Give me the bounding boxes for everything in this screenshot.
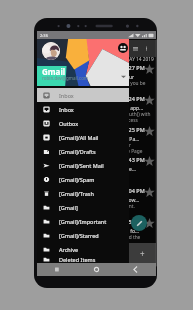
button[interactable]: Compose: [131, 215, 147, 231]
button[interactable]: [Gmail]/Trash: [37, 186, 129, 200]
button[interactable]: Recents: [37, 263, 76, 276]
staticText: Deleted Items: [59, 256, 96, 263]
button[interactable]: Back: [116, 263, 156, 276]
staticText: MAY 14 2019: [125, 56, 154, 63]
staticText: llow...: [126, 197, 140, 204]
button[interactable]: Inbox: [37, 88, 129, 102]
staticText: d you be: [126, 80, 146, 87]
staticText: 2:36: [40, 33, 48, 38]
staticText: 2:27 PM: [124, 64, 145, 71]
staticText: robin.dev@gmail.com: [42, 75, 89, 81]
button[interactable]: 2:27 PM: [37, 63, 156, 93]
staticText: 1 app...: [126, 105, 144, 112]
button[interactable]: Outbox: [37, 116, 129, 130]
staticText: [Gmail]/Spam: [59, 176, 95, 183]
staticText: [Gmail]/All Mail: [59, 134, 99, 141]
button[interactable]: Inbox: [37, 102, 129, 116]
staticText: 1:25 PM: [124, 126, 145, 133]
staticText: our: [126, 74, 135, 81]
staticText: Gmail: [42, 66, 66, 77]
staticText: Auth() with ccess: [126, 111, 151, 123]
staticText: ge...: [126, 166, 136, 173]
button[interactable]: 1:51 PM: [37, 217, 156, 247]
staticText: [Gmail]/Sent Mail: [59, 162, 104, 169]
staticText: +: [140, 248, 145, 259]
staticText: r Pa...: [126, 136, 140, 143]
button[interactable]: Account photo: [37, 39, 129, 86]
staticText: ant.: [126, 203, 135, 210]
staticText: 2:24 PM: [124, 95, 145, 102]
button[interactable]: 1:43 PM: [37, 155, 156, 185]
button[interactable]: 1:25 PM: [37, 125, 156, 155]
staticText: Outbox: [59, 120, 79, 127]
staticText: Inbox: [59, 92, 74, 99]
button[interactable]: Expand account list: [119, 72, 127, 80]
button[interactable]: [Gmail]/Sent Mail: [37, 158, 129, 172]
button[interactable]: Account photo: [42, 42, 60, 60]
button[interactable]: [Gmail]/Important: [37, 214, 129, 228]
button[interactable]: Deleted Items: [37, 256, 129, 263]
button[interactable]: Archive: [37, 242, 129, 256]
staticText: 1 fo...: [126, 228, 139, 235]
staticText: [Gmail]/Trash: [59, 190, 94, 197]
button[interactable]: Home: [76, 263, 116, 276]
staticText: 1:43 PM: [124, 156, 145, 163]
button[interactable]: Second account: [118, 43, 128, 53]
staticText: ur le Page: [126, 142, 143, 154]
staticText: [Gmail]/Important: [59, 218, 107, 225]
staticText: Inbox: [59, 106, 74, 113]
button[interactable]: 1:04 PM: [37, 186, 156, 216]
button[interactable]: [Gmail]/Starred: [37, 228, 129, 242]
button[interactable]: [Gmail]/Drafts: [37, 144, 129, 158]
staticText: [Gmail]/Starred: [59, 232, 99, 239]
staticText: [Gmail]/Drafts: [59, 148, 96, 155]
staticText: 1:51 PM: [124, 218, 145, 225]
staticText: Archive: [59, 246, 79, 253]
staticText: 1:04 PM: [124, 187, 145, 194]
staticText: [Gmail]: [59, 204, 78, 211]
button[interactable]: [37, 40, 156, 57]
button[interactable]: +: [129, 243, 156, 263]
button[interactable]: [Gmail]: [37, 200, 129, 214]
button[interactable]: [Gmail]/Spam: [37, 172, 129, 186]
button[interactable]: [Gmail]/All Mail: [37, 130, 129, 144]
button[interactable]: 2:24 PM: [37, 94, 156, 124]
staticText: ed the: [126, 234, 141, 241]
